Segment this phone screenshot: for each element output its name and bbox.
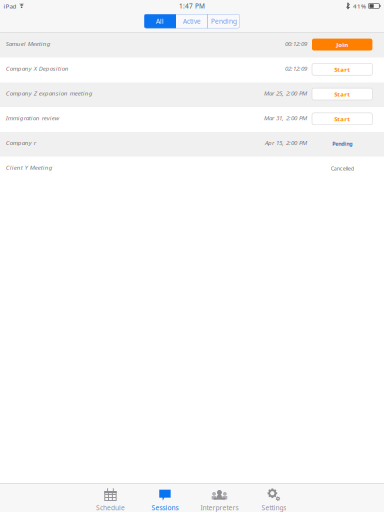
staticText: Mar 25, 2:00 PM bbox=[264, 89, 307, 97]
staticText: Active bbox=[183, 17, 201, 26]
staticText: Start bbox=[334, 115, 350, 123]
staticText: Company Z expansion meeting bbox=[6, 89, 93, 97]
staticText: Client Y Meeting bbox=[6, 163, 53, 172]
staticText: Start bbox=[334, 90, 350, 98]
staticText: 02:12:09 bbox=[285, 64, 307, 73]
staticText: Sessions bbox=[151, 503, 178, 512]
staticText: Samuel Meeting bbox=[6, 39, 51, 48]
staticText: Settings bbox=[261, 503, 286, 512]
staticText: Immigration review bbox=[6, 114, 59, 122]
button[interactable]: Sessions bbox=[138, 484, 192, 512]
button[interactable]: Active bbox=[176, 14, 208, 28]
button[interactable]: All bbox=[144, 14, 176, 28]
staticText: All bbox=[156, 17, 164, 26]
staticText: Mar 31, 2:00 PM bbox=[264, 114, 307, 122]
staticText: Company X Deposition bbox=[6, 64, 69, 73]
staticText: Pending bbox=[332, 140, 352, 147]
button[interactable]: Join bbox=[312, 39, 372, 50]
staticText: Interpreters bbox=[200, 503, 238, 512]
button[interactable]: Start bbox=[312, 63, 372, 75]
button[interactable]: Start bbox=[312, 113, 372, 125]
staticText: Join bbox=[336, 40, 348, 49]
staticText: Cancelled bbox=[331, 165, 354, 172]
staticText: Schedule bbox=[96, 503, 125, 512]
button[interactable]: Start bbox=[312, 88, 372, 100]
staticText: 1:47 PM bbox=[179, 2, 205, 10]
button[interactable]: Schedule bbox=[83, 484, 138, 512]
staticText: 41% bbox=[353, 2, 366, 10]
staticText: Company r bbox=[6, 138, 36, 147]
staticText: iPad bbox=[3, 2, 16, 10]
button[interactable]: Interpreters bbox=[192, 484, 247, 512]
button[interactable]: Pending bbox=[208, 14, 240, 28]
staticText: Pending bbox=[211, 17, 237, 26]
button[interactable]: Settings bbox=[247, 484, 301, 512]
staticText: 00:12:09 bbox=[285, 39, 307, 48]
staticText: Apr 15, 2:00 PM bbox=[265, 138, 307, 147]
staticText: Start bbox=[334, 65, 350, 73]
